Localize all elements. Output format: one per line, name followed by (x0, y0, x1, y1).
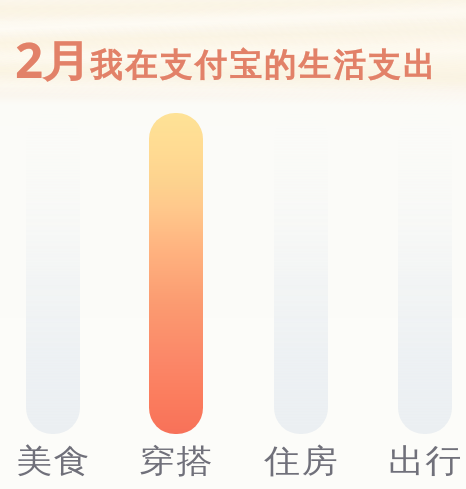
button[interactable]: 美食 (2, 438, 104, 480)
staticText: 穿搭 (139, 440, 214, 478)
staticText: 美食 (16, 440, 91, 478)
staticText: 住房 (264, 440, 339, 478)
button[interactable] (149, 113, 203, 434)
staticText: 月 (42, 35, 91, 89)
staticText: 2 (15, 26, 44, 93)
button[interactable] (274, 113, 328, 434)
button[interactable] (26, 113, 80, 434)
button[interactable]: 住房 (250, 438, 352, 480)
button[interactable]: 出行 (374, 438, 466, 480)
button[interactable] (398, 113, 452, 434)
staticText: 出行 (388, 440, 463, 478)
staticText: 我在支付宝的生活支出 (89, 45, 436, 85)
button[interactable]: 穿搭 (125, 438, 227, 480)
